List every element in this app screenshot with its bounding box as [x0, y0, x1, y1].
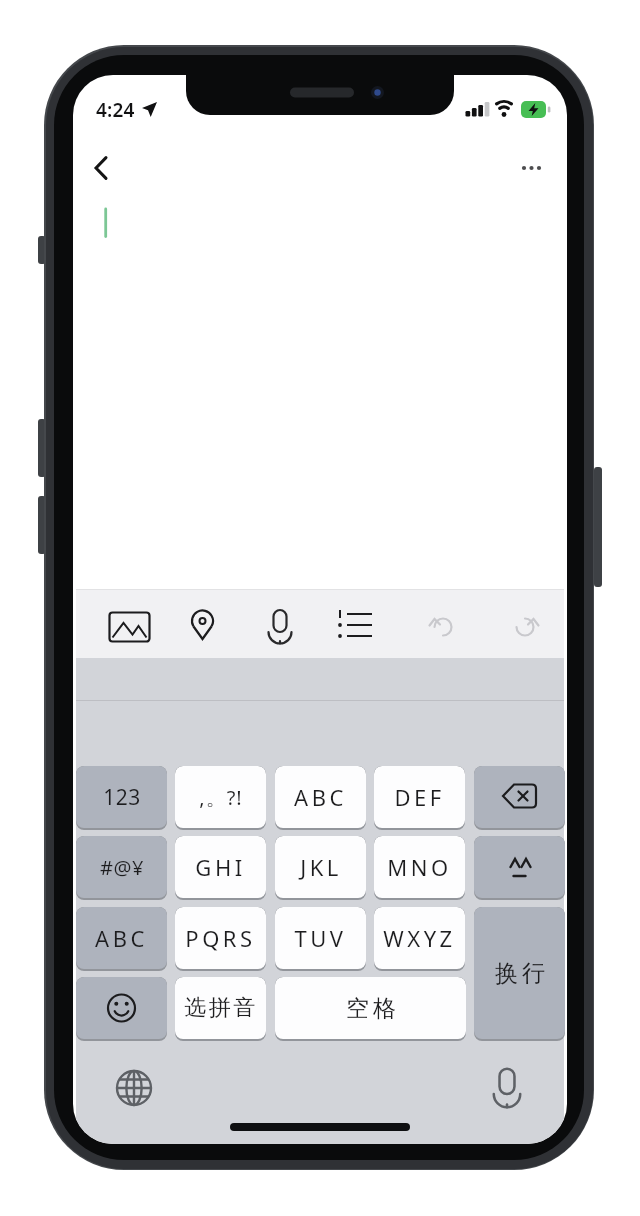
- button[interactable]: 选拼音: [175, 977, 266, 1041]
- button[interactable]: ABC: [76, 907, 167, 971]
- button[interactable]: PQRS: [175, 907, 266, 971]
- staticText: 选拼音: [184, 994, 258, 1022]
- button[interactable]: [501, 602, 549, 648]
- button[interactable]: [474, 766, 565, 830]
- button[interactable]: ABC: [275, 766, 366, 830]
- button[interactable]: MNO: [374, 836, 465, 900]
- button[interactable]: [83, 150, 127, 186]
- button[interactable]: WXYZ: [374, 907, 465, 971]
- button[interactable]: [106, 602, 154, 648]
- button[interactable]: DEF: [374, 766, 465, 830]
- staticText: ABC: [95, 923, 148, 953]
- staticText: GHI: [195, 852, 246, 882]
- staticText: DEF: [394, 782, 445, 812]
- staticText: JKL: [300, 852, 342, 882]
- staticText: 123: [103, 783, 141, 812]
- button[interactable]: ,。?!: [175, 766, 266, 830]
- button[interactable]: [419, 602, 467, 648]
- staticText: ,。?!: [199, 784, 243, 811]
- button[interactable]: 换行: [474, 907, 565, 1041]
- button[interactable]: [331, 602, 379, 648]
- button[interactable]: [112, 1066, 156, 1110]
- button[interactable]: [179, 602, 227, 648]
- staticText: #@¥: [100, 854, 144, 881]
- staticText: TUV: [294, 923, 347, 953]
- button[interactable]: [256, 602, 304, 648]
- button[interactable]: JKL: [275, 836, 366, 900]
- staticText: 空格: [344, 994, 398, 1023]
- button[interactable]: [485, 1064, 529, 1108]
- button[interactable]: [474, 836, 565, 900]
- staticText: WXYZ: [383, 923, 456, 953]
- staticText: ABC: [294, 782, 347, 812]
- button[interactable]: GHI: [175, 836, 266, 900]
- staticText: MNO: [387, 852, 452, 882]
- button[interactable]: TUV: [275, 907, 366, 971]
- staticText: PQRS: [185, 923, 256, 953]
- button[interactable]: 空格: [275, 977, 466, 1041]
- staticText: 换行: [493, 959, 547, 988]
- button[interactable]: 123: [76, 766, 167, 830]
- button[interactable]: [76, 977, 167, 1041]
- button[interactable]: [510, 152, 554, 184]
- button[interactable]: #@¥: [76, 836, 167, 900]
- staticText: 4:24: [96, 97, 135, 123]
